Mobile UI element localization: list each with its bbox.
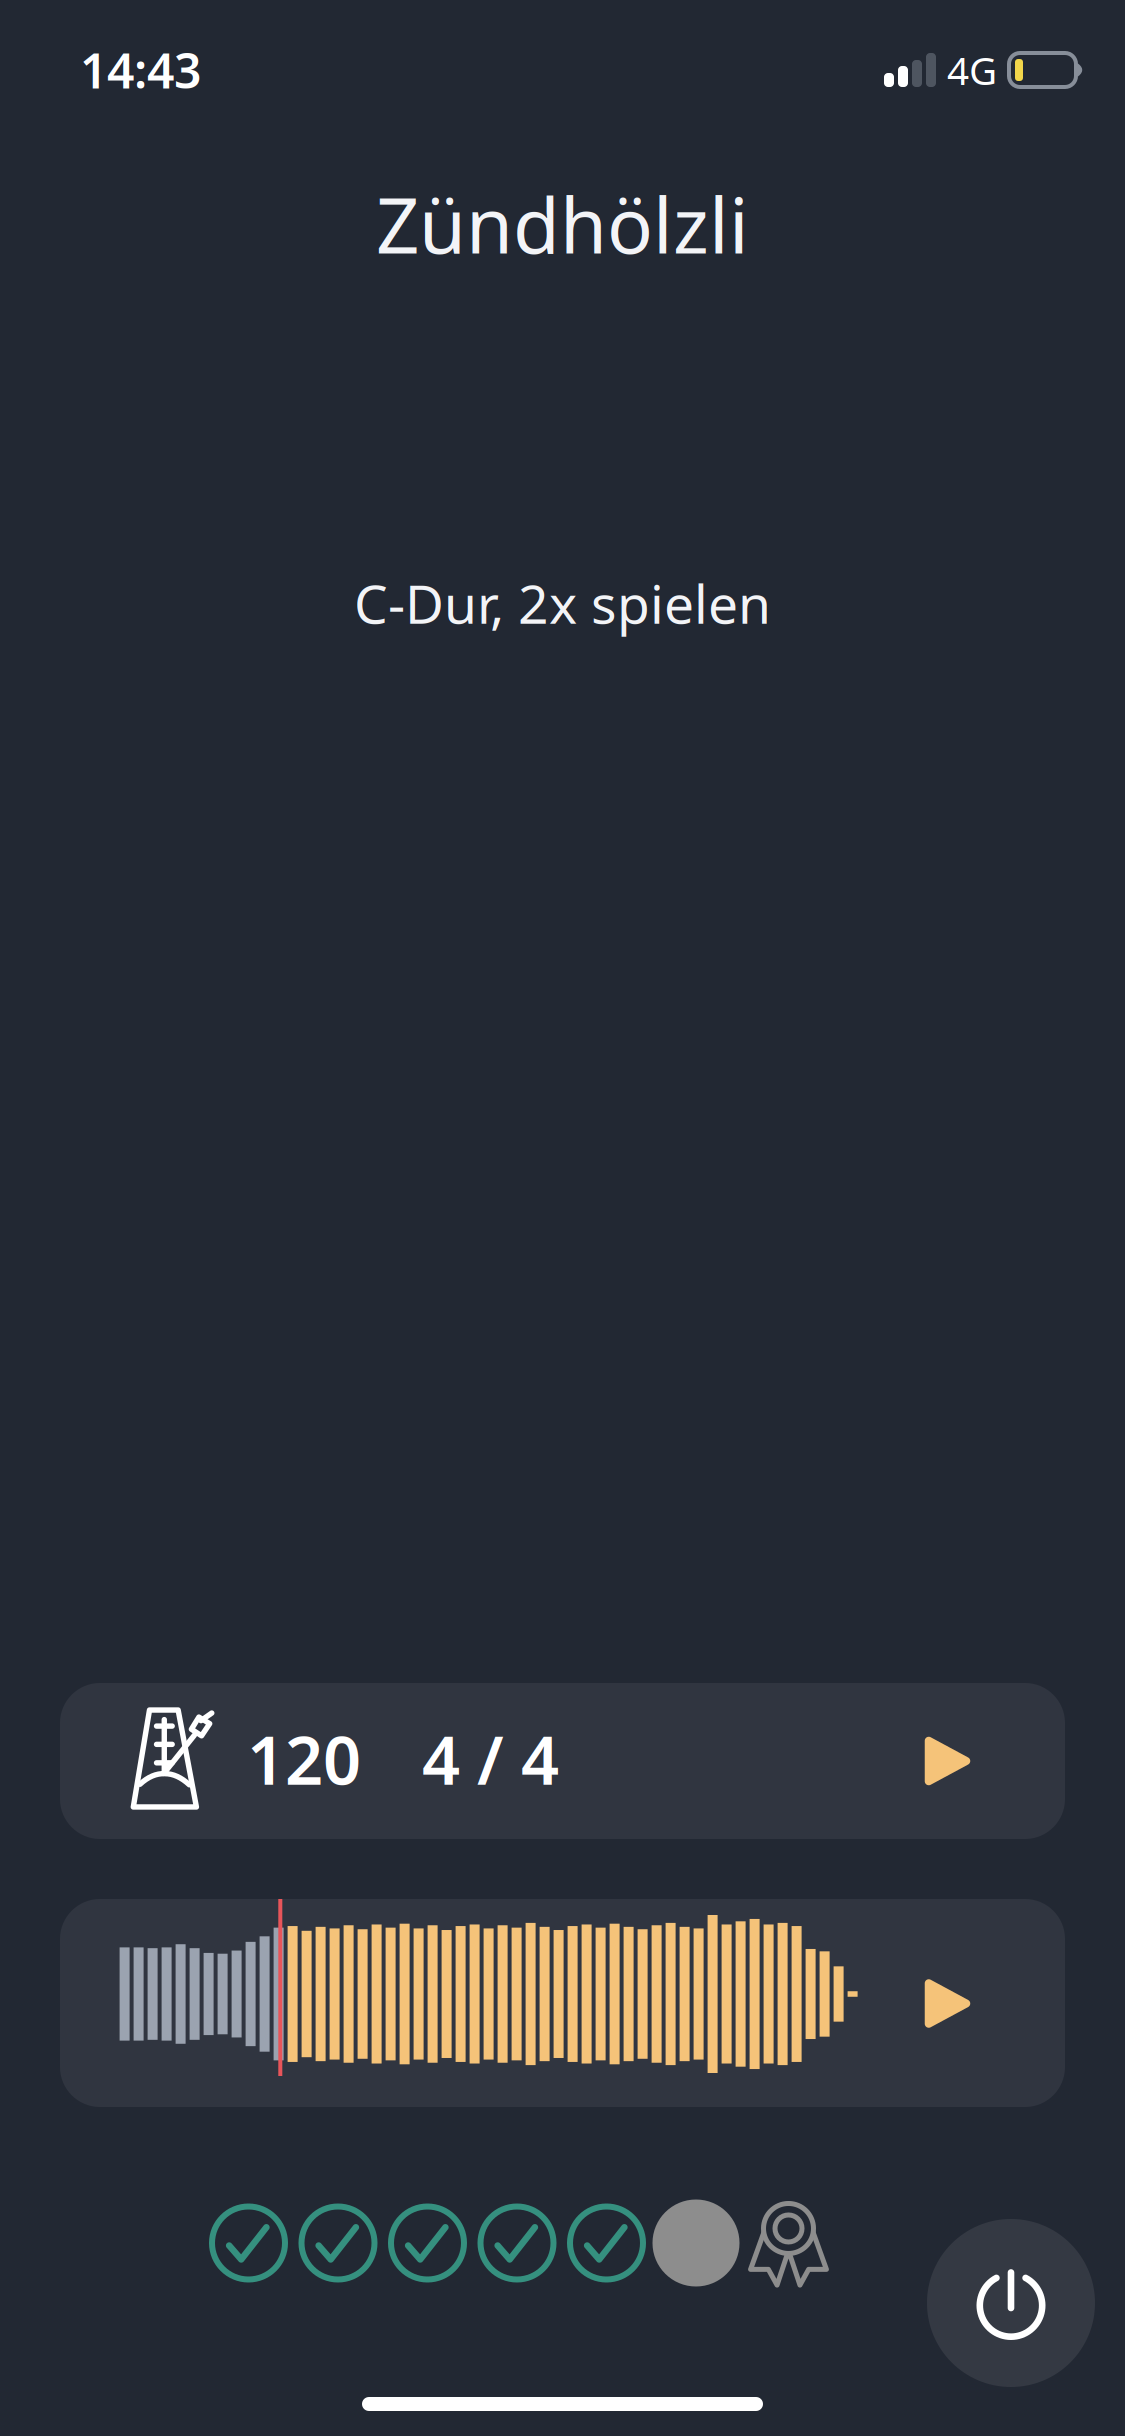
button[interactable]: 120: [60, 1683, 1065, 1839]
staticText: Zündhölzli: [376, 173, 749, 274]
staticText: 120: [247, 1715, 361, 1803]
button[interactable]: Power: [927, 2219, 1095, 2387]
staticText: C-Dur, 2x spielen: [354, 568, 771, 638]
staticText: 14:43: [80, 38, 201, 102]
button[interactable]: [60, 1899, 1065, 2107]
staticText: 4G: [947, 44, 997, 96]
staticText: 4 / 4: [422, 1715, 559, 1803]
